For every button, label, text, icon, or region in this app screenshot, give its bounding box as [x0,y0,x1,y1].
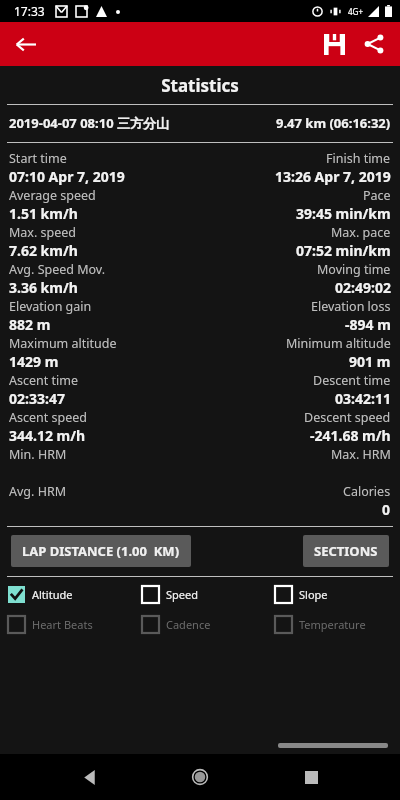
staticText: 02:49:02 [335,278,391,297]
staticText: Start time [9,150,67,167]
button[interactable]: Slope [267,586,400,603]
staticText: -894 m [345,315,391,334]
staticText: Statistics [0,74,400,97]
staticText: 901 m [349,352,391,371]
staticText: Average speed [9,187,96,204]
button[interactable]: Save [314,24,354,64]
staticText: Ascent time [9,372,78,389]
button[interactable]: Speed [134,586,267,603]
staticText: Maximum altitude [9,335,117,352]
staticText: 02:33:47 [9,389,65,408]
staticText: 07:10 Apr 7, 2019 [9,167,125,186]
staticText: Descent time [313,372,391,389]
staticText: Elevation gain [9,298,92,315]
button[interactable]: SECTIONS [303,535,389,567]
staticText: Finish time [326,150,391,167]
staticText: 2019-04-07 08:10 三方分山 [9,114,169,132]
staticText: Min. HRM [9,446,67,463]
button[interactable]: Recents [289,755,333,799]
staticText: 4G+ [348,6,363,17]
staticText: Minimum altitude [286,335,391,352]
staticText: 3.36 km/h [9,278,78,297]
staticText: 344.12 m/h [9,426,86,445]
staticText: Cadence [166,617,211,632]
staticText: 7.62 km/h [9,241,78,260]
staticText: Slope [299,587,328,602]
staticText: 1.51 km/h [9,204,78,223]
staticText: Elevation loss [311,298,391,315]
staticText: Temperature [299,617,366,632]
staticText: Altitude [32,587,73,602]
staticText: 1429 m [9,352,59,371]
staticText: Max. HRM [331,446,391,463]
staticText: 07:52 min/km [296,241,391,260]
staticText: Max. speed [9,224,77,241]
staticText: 17:33 [14,3,45,19]
staticText: 13:26 Apr 7, 2019 [275,167,391,186]
staticText: Calories [343,483,391,500]
staticText: Speed [166,587,198,602]
button[interactable]: Heart Beats [0,616,134,633]
staticText: Descent speed [304,409,391,426]
staticText: Avg. Speed Mov. [9,261,106,278]
staticText: 0 [382,500,391,519]
button[interactable]: Back [6,25,44,63]
staticText: LAP DISTANCE (1.00 KM) [22,542,180,560]
button[interactable]: Share [354,24,394,64]
button[interactable]: Back [67,755,111,799]
staticText: Pace [363,187,391,204]
button[interactable]: LAP DISTANCE (1.00 KM) [11,535,191,567]
staticText: Moving time [317,261,391,278]
button[interactable]: Temperature [267,616,400,633]
staticText: Avg. HRM [9,483,67,500]
staticText: Ascent speed [9,409,87,426]
button[interactable]: Cadence [134,616,267,633]
staticText: -241.68 m/h [310,426,391,445]
button[interactable]: Altitude [0,586,134,603]
staticText: Heart Beats [32,617,93,632]
staticText: 9.47 km (06:16:32) [276,114,391,132]
staticText: SECTIONS [314,542,378,560]
staticText: Max. pace [331,224,391,241]
staticText: 39:45 min/km [296,204,391,223]
staticText: 03:42:11 [335,389,391,408]
staticText: 882 m [9,315,51,334]
button[interactable]: Home [178,755,222,799]
